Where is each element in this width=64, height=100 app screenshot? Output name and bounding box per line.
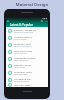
staticText: Action button [14, 38, 27, 41]
button[interactable]: Latest & Popular [6, 23, 48, 27]
button[interactable]: Tabbed Layout [6, 62, 48, 69]
staticText: Tabbed Layout [14, 63, 32, 66]
staticText: Bottom Navigation [14, 28, 37, 31]
button[interactable]: Material Cards [6, 41, 48, 48]
button[interactable]: Collapsing Bar [6, 76, 48, 83]
button[interactable]: Navigation Drawer [6, 55, 48, 62]
staticText: Snackbar Toast [14, 70, 32, 73]
staticText: Material Cards [14, 42, 32, 45]
staticText: Input controls [14, 52, 28, 55]
button[interactable]: Floating Button [6, 34, 48, 41]
staticText: Side navigation [14, 59, 29, 62]
button[interactable]: Recycler View [6, 83, 48, 87]
button[interactable]: Snackbar Toast [6, 69, 48, 76]
staticText: Floating Button [14, 35, 33, 38]
staticText: Collapsing Bar [14, 77, 31, 80]
staticText: Text Input Field [14, 49, 33, 52]
button[interactable]: Open navigation menu [6, 19, 10, 23]
staticText: Surface containers [14, 45, 32, 48]
staticText: Latest & Popular [10, 23, 33, 27]
button[interactable]: Bottom Navigation [6, 27, 48, 34]
staticText: Brief message [14, 73, 28, 76]
staticText: Material Design [0, 2, 64, 8]
staticText: Swipe views [14, 66, 26, 69]
staticText: Scrolling header [14, 80, 30, 83]
button[interactable]: Search [40, 19, 44, 23]
staticText: Navigation Drawer [14, 56, 37, 59]
staticText: Material component [14, 31, 34, 34]
button[interactable]: More options [44, 19, 48, 23]
staticText: Recycler View [14, 83, 30, 86]
button[interactable]: Text Input Field [6, 48, 48, 55]
